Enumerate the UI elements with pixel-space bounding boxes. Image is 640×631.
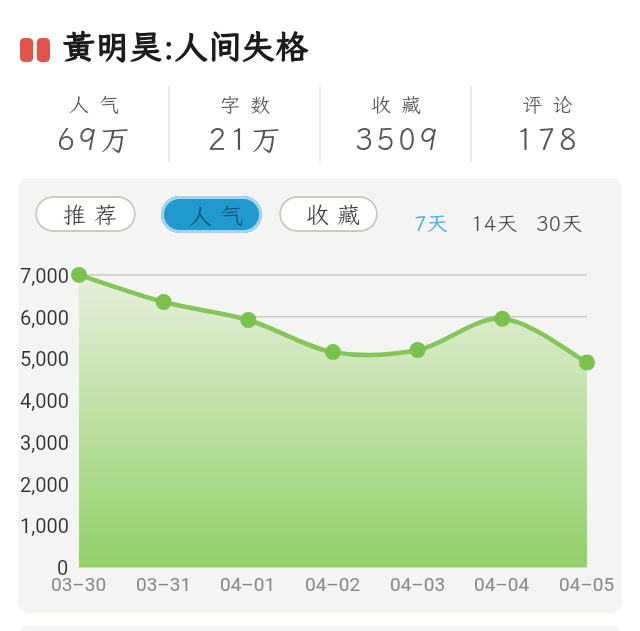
staticText: 6,000 xyxy=(20,306,69,329)
staticText: 04–04 xyxy=(474,573,530,595)
staticText: 人气 xyxy=(69,91,129,117)
staticText: 推荐 xyxy=(59,199,121,229)
staticText: 3509 xyxy=(355,119,441,159)
staticText: 7,000 xyxy=(20,264,69,287)
staticText: 黄明昊:人间失格 xyxy=(62,24,309,67)
staticText: 黄明昊:人间失格 xyxy=(62,25,309,68)
button[interactable]: 14天 xyxy=(456,204,532,241)
staticText: 收藏 xyxy=(302,199,364,229)
staticText: 0 xyxy=(57,556,69,579)
staticText: 03–31 xyxy=(136,573,192,595)
staticText: 04–05 xyxy=(559,573,615,595)
staticText: 人气 xyxy=(185,200,247,230)
staticText: 3,000 xyxy=(20,431,69,454)
staticText: 178 xyxy=(516,119,581,159)
staticText: 4,000 xyxy=(20,389,69,412)
staticText: 字数 xyxy=(220,91,280,117)
staticText: 5,000 xyxy=(20,347,69,370)
staticText: 69万 xyxy=(57,119,134,159)
staticText: 30天 xyxy=(536,209,583,237)
staticText: 2,000 xyxy=(20,473,69,496)
button[interactable]: 人气 xyxy=(161,196,262,233)
staticText: 评论 xyxy=(522,91,582,117)
staticText: 14天 xyxy=(471,209,518,237)
button[interactable]: 30天 xyxy=(521,204,597,241)
staticText: 04–01 xyxy=(220,573,276,595)
button[interactable]: 7天 xyxy=(396,204,466,241)
staticText: 21万 xyxy=(208,119,285,159)
staticText: 1,000 xyxy=(20,514,69,537)
staticText: 04–03 xyxy=(390,573,446,595)
button[interactable]: 收藏 xyxy=(279,196,378,232)
staticText: 03–30 xyxy=(51,573,107,595)
button[interactable]: 推荐 xyxy=(35,196,136,232)
staticText: 04–02 xyxy=(305,573,361,595)
staticText: 黄明昊:人间失格 xyxy=(63,24,310,67)
staticText: 7天 xyxy=(414,209,448,237)
staticText: 收藏 xyxy=(371,91,431,117)
